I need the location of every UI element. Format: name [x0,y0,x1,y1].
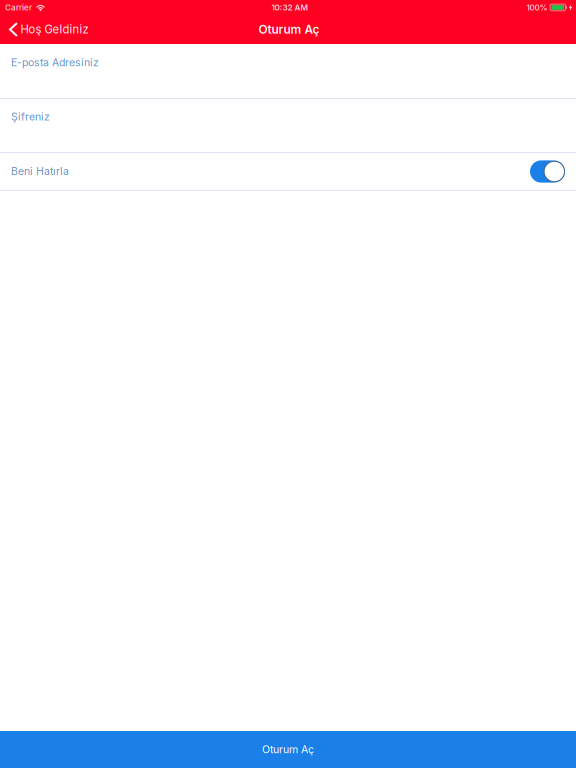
button[interactable]: Hoş Geldiniz [0,15,96,44]
staticText: Oturum Aç [258,22,319,37]
staticText: 10:32 AM [271,3,308,12]
button[interactable]: E-posta Adresiniz [0,44,576,98]
staticText: Şifreniz [11,110,50,123]
button[interactable]: Beni Hatırla [0,153,576,190]
button[interactable]: Şifreniz [0,99,576,152]
staticText: Oturum Aç [262,743,314,756]
staticText: Carrier [5,3,32,12]
button[interactable]: Oturum Aç [0,731,576,768]
staticText: 100% [526,3,547,12]
staticText: E-posta Adresiniz [11,56,99,69]
staticText: Beni Hatırla [11,165,69,177]
staticText: Hoş Geldiniz [20,23,88,36]
